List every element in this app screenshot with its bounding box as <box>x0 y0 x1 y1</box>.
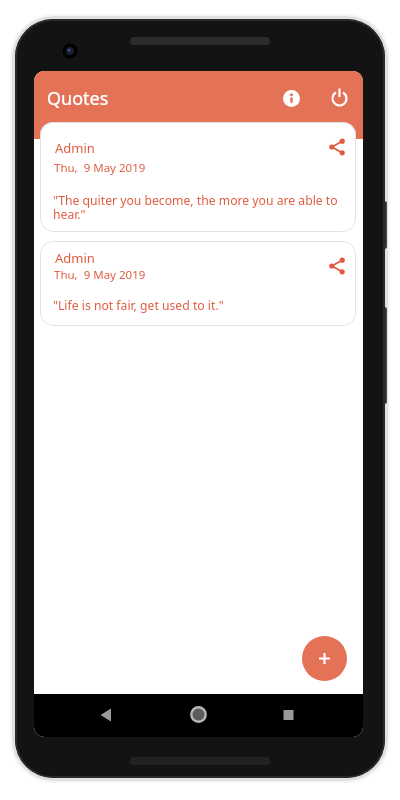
staticText: Admin <box>55 249 95 267</box>
button[interactable]: Admin <box>40 241 356 326</box>
button[interactable] <box>272 699 304 731</box>
staticText: Admin <box>55 139 95 157</box>
button[interactable]: Admin <box>40 122 356 232</box>
button[interactable] <box>90 699 122 731</box>
staticText: Quotes <box>47 86 109 111</box>
button[interactable] <box>328 257 346 275</box>
button[interactable] <box>328 138 346 156</box>
staticText: Thu, 9 May 2019 <box>54 267 146 283</box>
staticText: "The quiter you become, the more you are… <box>53 192 349 222</box>
button[interactable] <box>283 90 300 107</box>
staticText: "Life is not fair, get used to it." <box>53 297 349 314</box>
button[interactable] <box>302 636 347 681</box>
button[interactable] <box>330 88 349 107</box>
staticText: Thu, 9 May 2019 <box>54 160 146 176</box>
button[interactable] <box>182 699 214 731</box>
